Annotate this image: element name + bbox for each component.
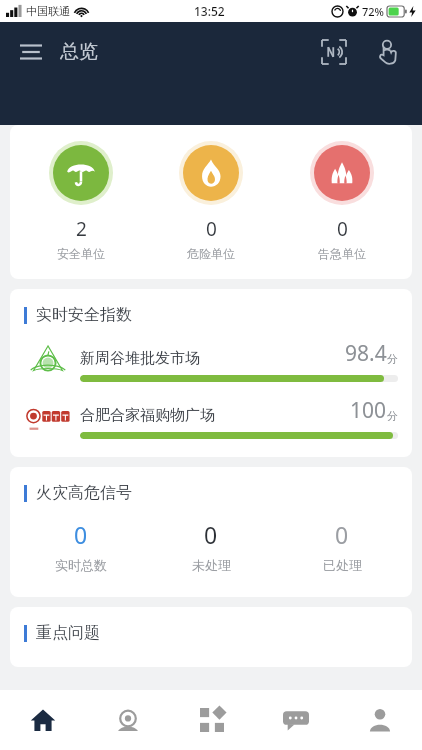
staticText: 0 bbox=[204, 519, 218, 550]
staticText: 13:52 bbox=[194, 3, 225, 19]
button[interactable]: 0 bbox=[151, 519, 271, 573]
staticText: 危险单位 bbox=[187, 246, 235, 261]
button[interactable]: 0 bbox=[282, 141, 402, 261]
staticText: 100 bbox=[350, 396, 387, 425]
button[interactable]: 0 bbox=[282, 519, 402, 573]
button[interactable]: Profile bbox=[338, 690, 422, 750]
button[interactable]: Home bbox=[0, 690, 85, 750]
button[interactable]: Tap action bbox=[368, 32, 408, 72]
button[interactable]: 新周谷堆批发市场 bbox=[24, 339, 398, 382]
staticText: 未处理 bbox=[192, 557, 231, 573]
staticText: 中国联通 bbox=[26, 4, 70, 18]
button[interactable]: 2 bbox=[21, 141, 141, 261]
staticText: 2 bbox=[76, 216, 87, 242]
staticText: 0 bbox=[337, 216, 348, 242]
button[interactable]: 合肥合家福购物广场 bbox=[24, 396, 398, 439]
staticText: 0 bbox=[206, 216, 217, 242]
staticText: 98.4 bbox=[345, 339, 387, 368]
staticText: 告急单位 bbox=[318, 246, 366, 261]
staticText: 安全单位 bbox=[57, 246, 105, 261]
staticText: 0 bbox=[335, 519, 349, 550]
button[interactable]: Messages bbox=[254, 690, 338, 750]
staticText: 分 bbox=[387, 409, 398, 423]
button[interactable]: Monitor bbox=[85, 690, 170, 750]
button[interactable]: Apps bbox=[170, 690, 254, 750]
staticText: 实时安全指数 bbox=[36, 305, 132, 325]
button[interactable]: Menu bbox=[14, 35, 48, 69]
staticText: 分 bbox=[387, 352, 398, 366]
button[interactable]: NFC scan bbox=[314, 32, 354, 72]
staticText: 合肥合家福购物广场 bbox=[80, 406, 215, 425]
staticText: 总览 bbox=[60, 40, 98, 64]
staticText: 实时总数 bbox=[55, 557, 107, 573]
staticText: 新周谷堆批发市场 bbox=[80, 349, 200, 368]
staticText: 72% bbox=[362, 4, 384, 19]
staticText: 重点问题 bbox=[36, 623, 100, 643]
staticText: 0 bbox=[74, 519, 88, 550]
staticText: 火灾高危信号 bbox=[36, 483, 132, 503]
button[interactable]: 0 bbox=[21, 519, 141, 573]
staticText: 已处理 bbox=[323, 557, 362, 573]
button[interactable]: 0 bbox=[151, 141, 271, 261]
